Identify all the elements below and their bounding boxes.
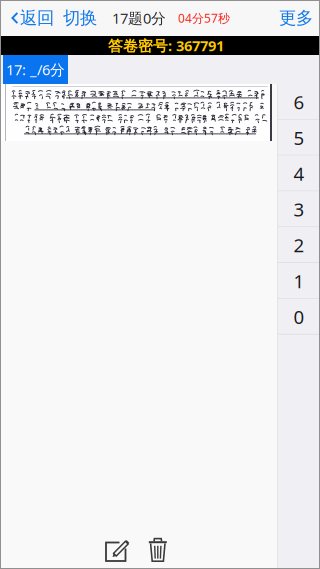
button[interactable]: 2 [278, 227, 320, 263]
staticText: 4 [293, 161, 304, 186]
staticText: 切换 [63, 7, 97, 29]
staticText: 04分57秒 [178, 10, 230, 26]
staticText: 3 [293, 197, 304, 222]
staticText: 答卷密号: 367791 [108, 36, 224, 55]
button[interactable]: 1 [278, 263, 320, 299]
staticText: 1 [293, 268, 304, 293]
button[interactable]: 17: _/6分 [3, 55, 68, 84]
staticText: 17: _/6分 [6, 60, 65, 79]
button[interactable]: 0 [278, 299, 320, 335]
button[interactable]: 更多 [273, 0, 320, 36]
button[interactable]: 6 [278, 84, 320, 120]
staticText: 0 [293, 304, 304, 329]
button[interactable]: 3 [278, 191, 320, 227]
button[interactable]: 返回 [0, 0, 56, 36]
staticText: 5 [293, 125, 304, 150]
button[interactable]: Delete [137, 537, 179, 563]
staticText: 返回 [20, 7, 54, 29]
staticText: 17题0分 [112, 8, 166, 28]
staticText: 2 [293, 233, 304, 257]
button[interactable]: 4 [278, 156, 320, 191]
button[interactable]: 切换 [56, 0, 104, 36]
button[interactable]: 5 [278, 120, 320, 156]
staticText: 6 [293, 89, 304, 114]
staticText: 更多 [279, 7, 313, 29]
button[interactable]: Annotate [98, 538, 137, 562]
